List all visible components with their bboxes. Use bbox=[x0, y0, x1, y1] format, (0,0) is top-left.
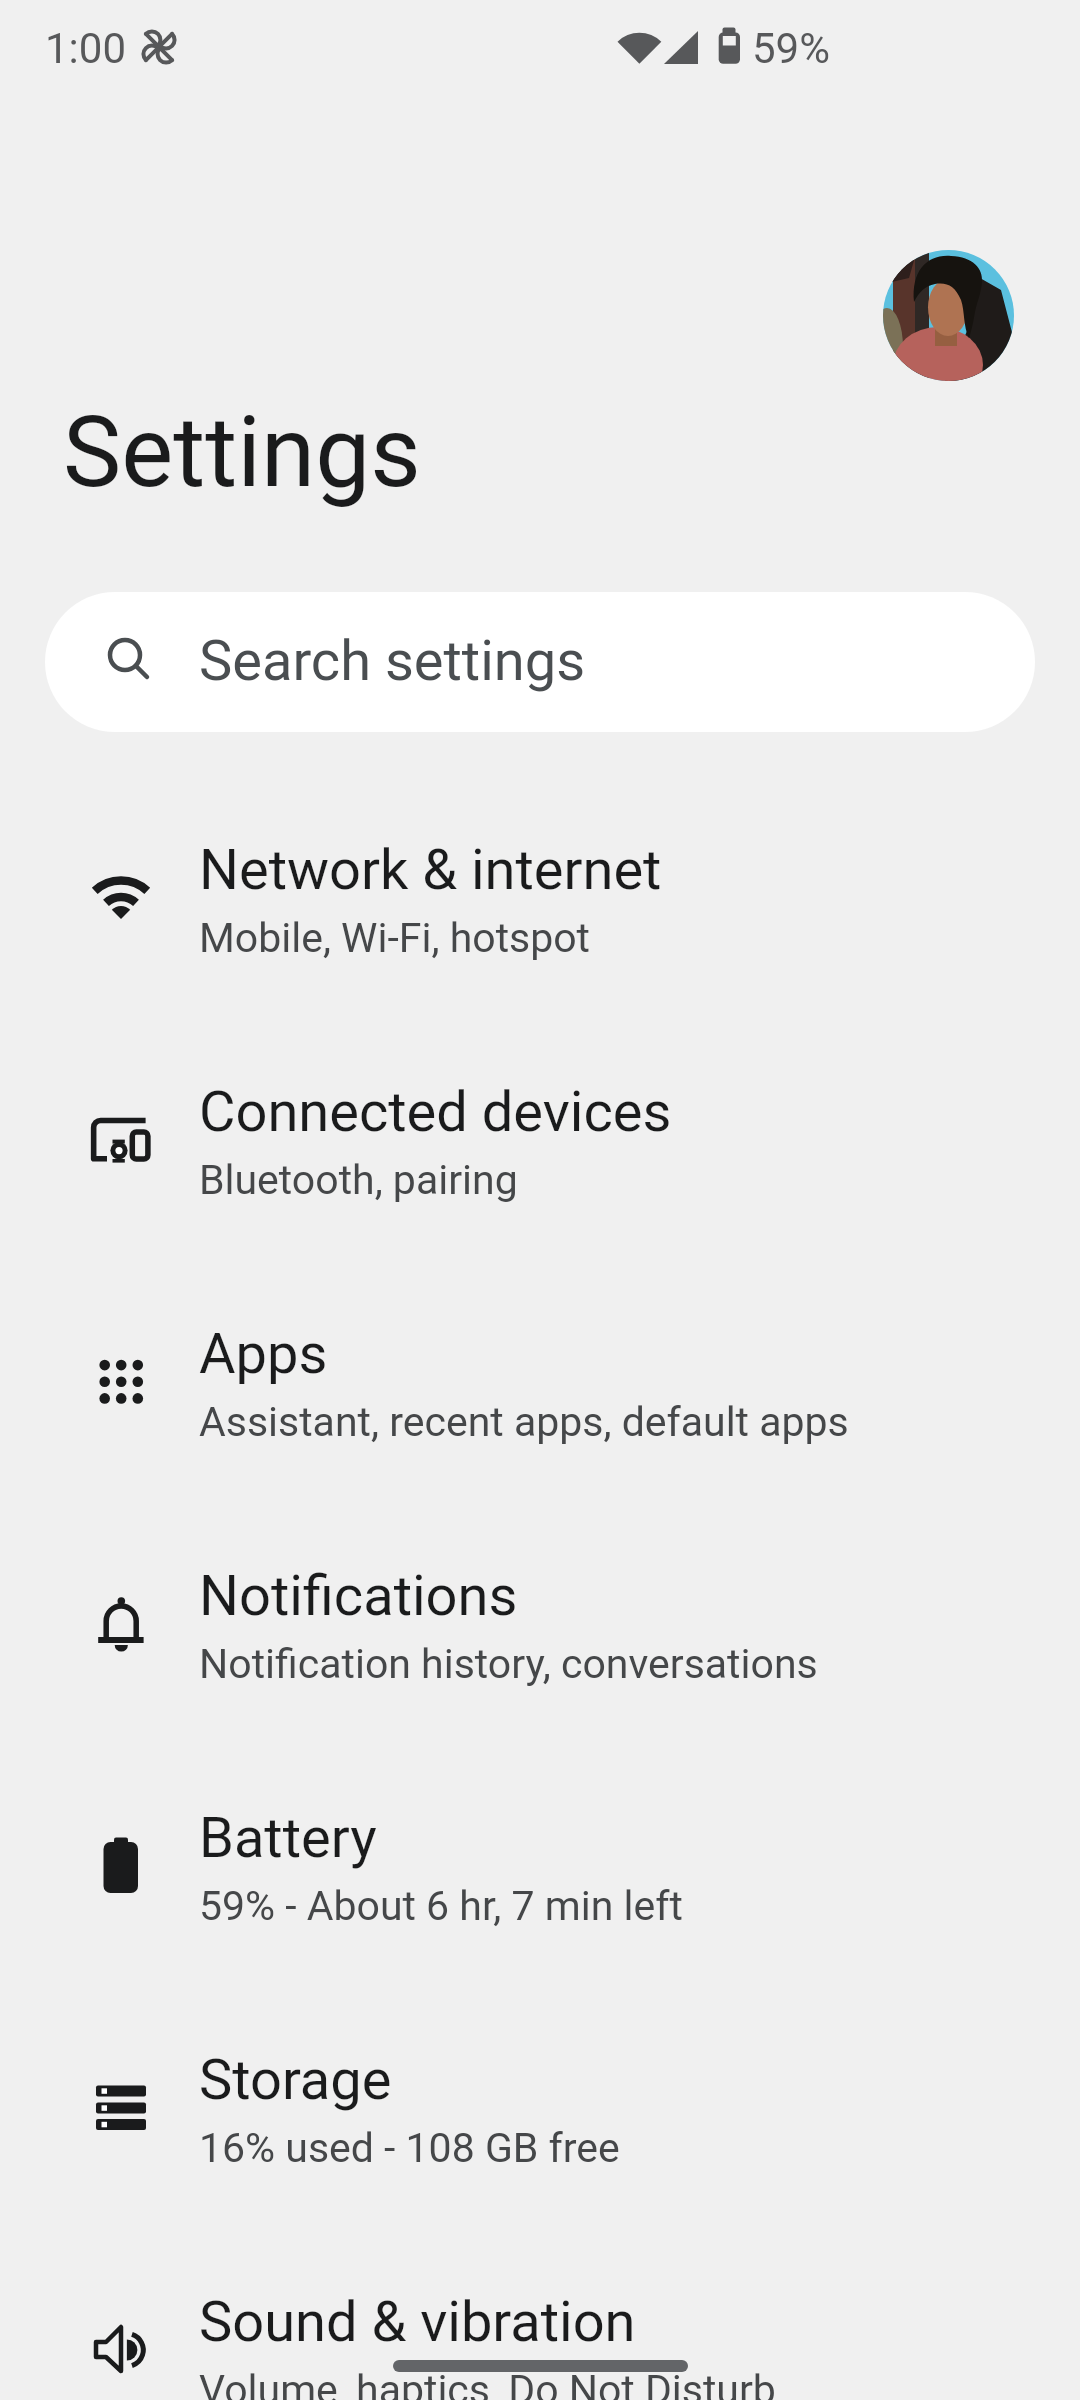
staticText: 59% bbox=[752, 24, 830, 73]
button[interactable]: Notifications bbox=[0, 1510, 1080, 1752]
staticText: Network & internet bbox=[199, 837, 662, 903]
staticText: Mobile, Wi-Fi, hotspot bbox=[199, 914, 591, 962]
button[interactable]: Network & internet bbox=[0, 784, 1080, 1026]
staticText: 59% - About 6 hr, 7 min left bbox=[199, 1882, 683, 1930]
staticText: Assistant, recent apps, default apps bbox=[199, 1398, 849, 1446]
staticText: Connected devices bbox=[199, 1079, 672, 1145]
staticText: Settings bbox=[63, 395, 421, 510]
button[interactable]: Storage bbox=[0, 1994, 1080, 2236]
button[interactable]: Sound & vibration bbox=[0, 2236, 1080, 2400]
staticText: Volume, haptics, Do Not Disturb bbox=[199, 2366, 776, 2400]
staticText: Sound & vibration bbox=[199, 2289, 636, 2355]
staticText: Storage bbox=[199, 2047, 392, 2113]
staticText: Battery bbox=[199, 1805, 377, 1871]
staticText: Notification history, conversations bbox=[199, 1640, 818, 1688]
button[interactable]: Apps bbox=[0, 1268, 1080, 1510]
staticText: Notifications bbox=[199, 1563, 518, 1629]
staticText: Bluetooth, pairing bbox=[199, 1156, 518, 1204]
staticText: 16% used - 108 GB free bbox=[199, 2124, 620, 2172]
button[interactable]: Battery bbox=[0, 1752, 1080, 1994]
button[interactable] bbox=[883, 250, 1014, 381]
staticText: Search settings bbox=[199, 628, 586, 694]
button[interactable]: Connected devices bbox=[0, 1026, 1080, 1268]
staticText: 1:00 bbox=[45, 24, 126, 73]
button[interactable]: Search settings bbox=[45, 592, 1035, 732]
staticText: Apps bbox=[199, 1321, 328, 1387]
